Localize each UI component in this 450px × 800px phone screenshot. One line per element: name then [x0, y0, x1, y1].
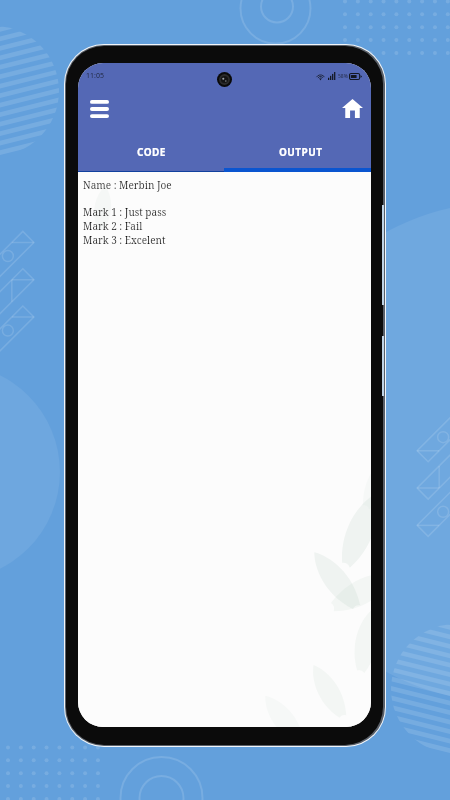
staticText: Name : Merbin Joe: [83, 178, 172, 192]
staticText: CODE: [137, 145, 166, 159]
button[interactable]: CODE: [78, 134, 224, 172]
staticText: Mark 1 : Just pass: [83, 205, 167, 219]
button[interactable]: Home: [338, 94, 366, 122]
button[interactable]: OUTPUT: [224, 134, 371, 172]
staticText: Mark 2 : Fail: [83, 219, 143, 233]
staticText: 11:05: [86, 71, 104, 81]
button[interactable]: Menu: [85, 95, 113, 123]
staticText: Mark 3 : Excelent: [83, 233, 166, 247]
staticText: 58%: [338, 73, 348, 80]
staticText: OUTPUT: [279, 145, 323, 159]
